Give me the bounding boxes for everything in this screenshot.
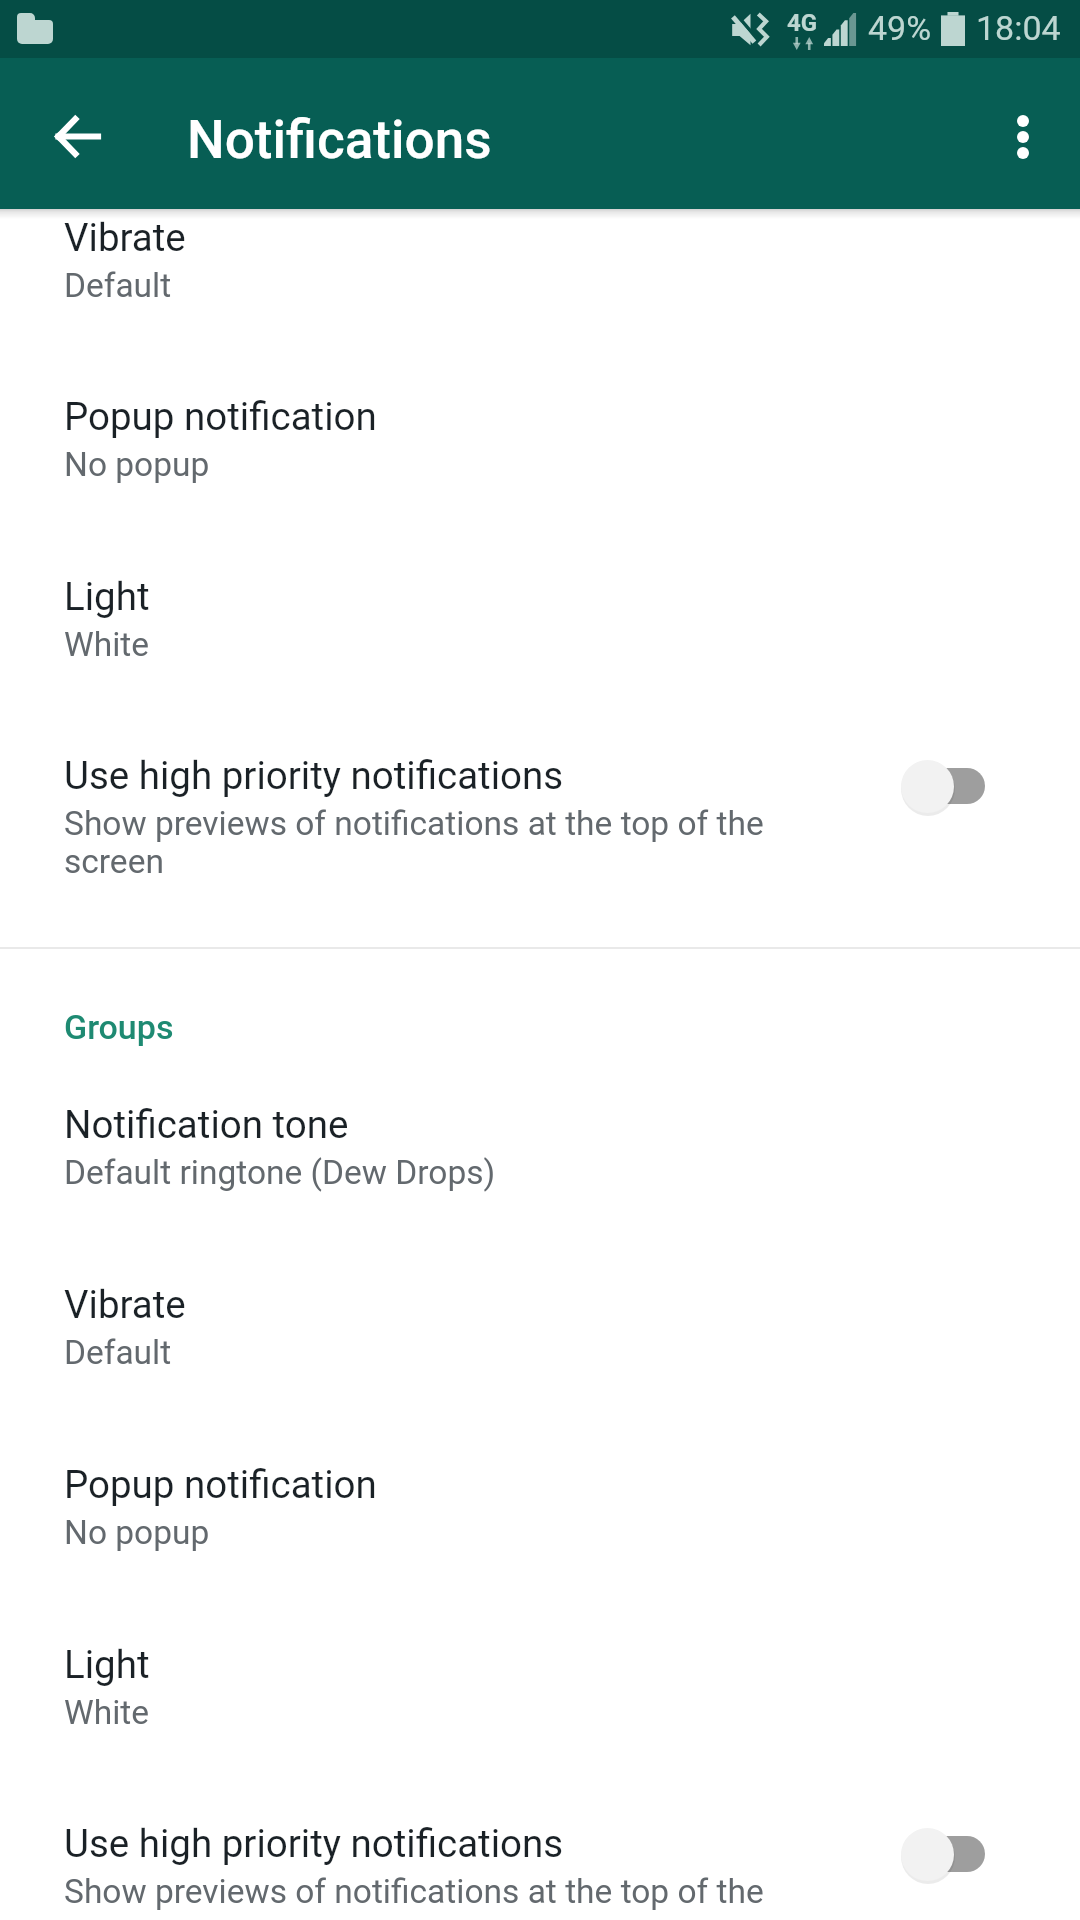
button[interactable]: Vibrate [0, 1268, 1080, 1420]
staticText: Popup notification [64, 394, 377, 439]
button[interactable]: Light [0, 560, 1080, 712]
staticText: White [64, 625, 150, 664]
button[interactable]: Popup notification [0, 380, 1080, 532]
button[interactable]: Light [0, 1628, 1080, 1780]
staticText: 49% [868, 8, 932, 48]
staticText: Light [64, 1642, 150, 1687]
staticText: Use high priority notifications [64, 1821, 564, 1866]
staticText: Vibrate [64, 1282, 186, 1327]
button[interactable]: Use high priority notifications, off [887, 742, 999, 830]
staticText: Notifications [187, 109, 492, 171]
staticText: Light [64, 574, 150, 619]
button[interactable]: Use high priority notifications, off [887, 1810, 999, 1898]
staticText: Default [64, 1333, 172, 1372]
staticText: 4G [787, 9, 818, 37]
staticText: 18:04 [976, 8, 1061, 48]
button[interactable]: Popup notification [0, 1448, 1080, 1600]
staticText: Show previews of notifications at the to… [64, 804, 764, 843]
staticText: Use high priority notifications [64, 753, 564, 798]
button[interactable]: Use high priority notifications [0, 1807, 1080, 1920]
staticText: Popup notification [64, 1462, 377, 1507]
button[interactable]: Navigate up [24, 83, 130, 189]
staticText: Vibrate [64, 215, 186, 260]
staticText: Default [64, 266, 172, 305]
button[interactable]: Vibrate [0, 201, 1080, 353]
button[interactable]: Notification tone [0, 1088, 1080, 1240]
staticText: No popup [64, 1513, 210, 1552]
staticText: Notification tone [64, 1102, 349, 1147]
staticText: White [64, 1693, 150, 1732]
button[interactable]: More options [975, 89, 1071, 185]
staticText: No popup [64, 445, 210, 484]
staticText: screen [64, 842, 164, 881]
staticText: Default ringtone (Dew Drops) [64, 1153, 496, 1192]
button[interactable]: Use high priority notifications [0, 739, 1080, 919]
staticText: Show previews of notifications at the to… [64, 1872, 764, 1911]
staticText: Groups [64, 1007, 174, 1047]
